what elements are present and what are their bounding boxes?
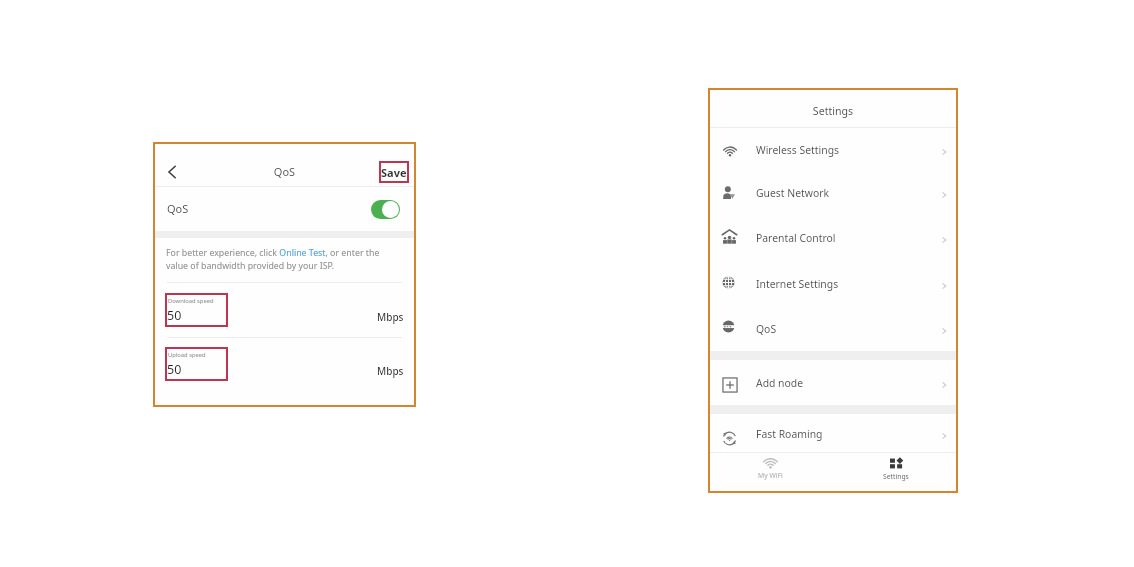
staticText: Save xyxy=(381,165,407,180)
button[interactable]: Back xyxy=(163,163,181,181)
button[interactable]: Upload speed xyxy=(165,347,228,381)
button[interactable]: Fast Roaming xyxy=(708,415,958,457)
button[interactable]: Download speed xyxy=(165,293,228,327)
staticText: Mbps xyxy=(377,310,404,324)
button[interactable]: For better experience, click Online Test… xyxy=(166,247,380,272)
staticText: QoS xyxy=(756,322,777,336)
button[interactable]: QoS xyxy=(153,187,416,232)
button[interactable]: Guest Network xyxy=(708,172,958,217)
button[interactable]: Wireless Settings xyxy=(708,129,958,174)
staticText: 50 xyxy=(167,361,182,378)
staticText: Settings xyxy=(883,472,909,481)
staticText: Download speed xyxy=(168,297,214,305)
button[interactable]: My WiFi xyxy=(708,453,833,493)
staticText: Add node xyxy=(756,376,804,390)
staticText: QoS xyxy=(153,164,416,179)
button[interactable]: Add node xyxy=(708,362,958,407)
button[interactable]: QoS switch xyxy=(371,200,400,219)
staticText: 50 xyxy=(167,307,182,324)
staticText: My WiFi xyxy=(758,471,783,480)
staticText: Mbps xyxy=(377,364,404,378)
staticText: Wireless Settings xyxy=(756,143,840,157)
staticText: Internet Settings xyxy=(756,277,839,291)
button[interactable]: Save xyxy=(379,161,409,183)
button[interactable]: QoS xyxy=(708,308,958,353)
button[interactable]: Parental Control xyxy=(708,217,958,262)
staticText: QoS xyxy=(167,201,189,216)
staticText: Settings xyxy=(708,104,958,118)
staticText: Guest Network xyxy=(756,186,830,200)
button[interactable]: Settings xyxy=(833,453,958,493)
button[interactable]: Internet Settings xyxy=(708,263,958,308)
staticText: Upload speed xyxy=(168,351,206,359)
staticText: Parental Control xyxy=(756,231,836,245)
staticText: Fast Roaming xyxy=(756,427,823,441)
